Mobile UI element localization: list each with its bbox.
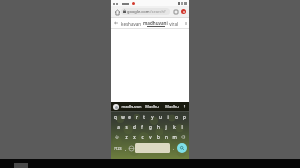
staticText: . [173,146,175,151]
button[interactable]: y [148,112,156,122]
staticText: k [173,124,176,130]
staticText: madhuvani [121,104,142,109]
button[interactable]: google.com [121,8,170,15]
button[interactable]: k [170,122,178,132]
button[interactable]: Backspace [178,132,188,142]
button[interactable]: Madhu XXX [162,102,182,111]
staticText: y [151,114,154,120]
staticText: v [149,134,152,140]
button[interactable]: madhuvani [121,102,142,111]
button[interactable]: n [162,132,170,142]
button[interactable]: j [162,122,170,132]
staticText: madhuvani [143,20,168,26]
button[interactable]: , [123,143,128,153]
button[interactable]: p [180,112,188,122]
staticText: l [181,124,183,130]
staticText: f [141,124,143,130]
staticText: a [117,124,120,130]
staticText: d [133,124,136,130]
staticText: /search?q=b [150,9,168,14]
staticText: p [183,114,186,120]
button[interactable]: Search [177,143,187,153]
staticText: google.com [127,9,150,14]
button[interactable]: h [154,122,162,132]
staticText: x [133,134,136,140]
button[interactable]: m [170,132,178,142]
staticText: Madhu XXX [162,104,182,109]
staticText: i [167,114,169,120]
staticText: r [136,114,138,120]
staticText: z [125,134,128,140]
button[interactable]: r [133,112,140,122]
staticText: w [121,114,125,120]
staticText: c [141,134,144,140]
staticText: g [149,124,152,130]
staticText: s [125,124,128,130]
staticText: viral video [168,21,186,27]
button[interactable]: o [172,112,180,122]
staticText: h [157,124,160,130]
button[interactable]: d [130,122,138,132]
staticText: b [157,134,160,140]
button[interactable]: keshavan [111,18,189,28]
button[interactable]: f [138,122,146,132]
staticText: keshavan [121,21,143,27]
button[interactable]: z [122,132,130,142]
button[interactable]: w [119,112,126,122]
button[interactable]: u [156,112,164,122]
button[interactable]: v [146,132,154,142]
button[interactable]: l [178,122,186,132]
button[interactable]: Voice input [182,104,187,109]
button[interactable]: x [130,132,138,142]
staticText: j [165,124,167,130]
button[interactable]: ?123 [113,143,123,153]
button[interactable]: g [146,122,154,132]
button[interactable]: More options [180,8,187,15]
staticText: Madhu XXX [142,104,162,109]
button[interactable]: . [171,143,176,153]
staticText: q [114,114,117,120]
staticText: o [175,114,178,120]
button[interactable]: c [138,132,146,142]
button[interactable]: Shift [112,132,122,142]
button[interactable]: b [154,132,162,142]
button[interactable]: Tabs [172,8,179,15]
button[interactable]: a [114,122,122,132]
button[interactable]: Google [113,104,119,110]
button[interactable]: Home [113,8,121,16]
button[interactable]: i [164,112,172,122]
button[interactable]: Madhu XXX [142,102,162,111]
staticText: t [143,114,145,120]
button[interactable]: t [140,112,148,122]
button[interactable]: e [126,112,133,122]
staticText: n [165,134,168,140]
staticText: u [159,114,162,120]
staticText: m [172,134,177,140]
button[interactable]: Space [135,143,170,153]
button[interactable]: s [122,122,130,132]
button[interactable]: Emoji [128,143,134,153]
staticText: , [125,146,127,151]
button[interactable]: q [112,112,119,122]
staticText: e [128,114,131,120]
staticText: ?123 [114,146,122,151]
